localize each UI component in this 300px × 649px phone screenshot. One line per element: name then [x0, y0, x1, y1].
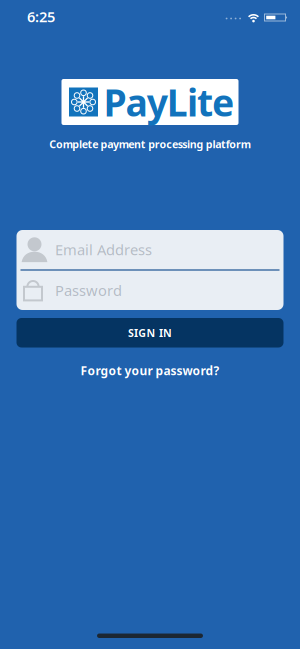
staticText: Password	[55, 281, 122, 300]
staticText: 6:25	[27, 7, 55, 26]
staticText: Complete payment processing platform	[49, 137, 251, 151]
button[interactable]: Password	[16, 271, 283, 310]
button[interactable]: Forgot your password?	[80, 362, 219, 378]
staticText: Email Address	[55, 240, 152, 259]
button[interactable]: Email Address	[16, 230, 283, 269]
staticText: SIGN IN	[128, 326, 172, 340]
button[interactable]: SIGN IN	[16, 318, 283, 347]
staticText: PayLite	[103, 77, 234, 127]
staticText: Forgot your password?	[80, 362, 219, 378]
